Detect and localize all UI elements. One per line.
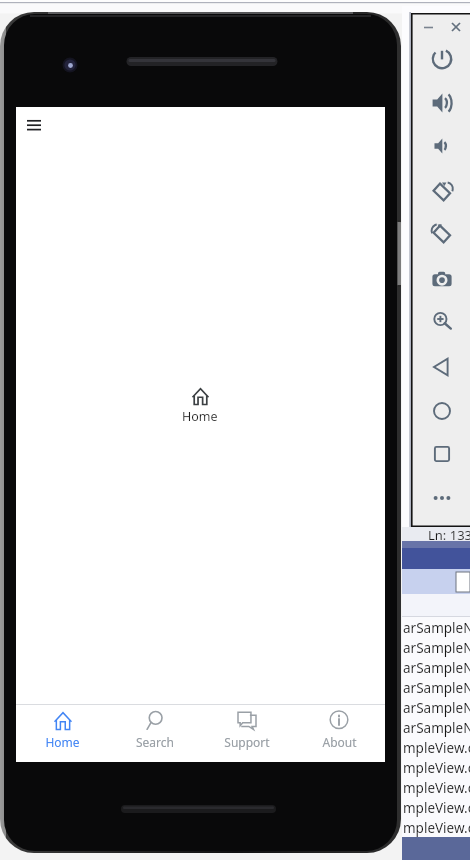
- staticText: arSampleNes: [403, 659, 470, 677]
- button[interactable]: More: [428, 484, 456, 512]
- staticText: arSampleNes: [403, 679, 470, 697]
- button[interactable]: Rotate right: [428, 220, 456, 248]
- staticText: mpleView.cs: [403, 759, 470, 777]
- button[interactable]: Close: [444, 15, 468, 39]
- button[interactable]: About: [293, 705, 385, 750]
- staticText: About: [322, 734, 357, 750]
- button[interactable]: Search: [109, 705, 201, 750]
- staticText: Support: [224, 734, 270, 750]
- button[interactable]: Power: [428, 45, 456, 73]
- button[interactable]: Rotate left: [428, 178, 456, 206]
- button[interactable]: Screenshot: [428, 265, 456, 293]
- button[interactable]: Home: [16, 705, 109, 750]
- staticText: Home: [45, 734, 80, 750]
- button[interactable]: Volume down: [428, 132, 456, 160]
- staticText: arSampleNes: [403, 699, 470, 717]
- button[interactable]: Volume up: [428, 89, 456, 117]
- staticText: arSampleNes: [403, 639, 470, 657]
- staticText: mpleView.cs: [403, 779, 470, 797]
- button[interactable]: Menu: [18, 109, 50, 141]
- staticText: Search: [136, 734, 174, 750]
- button[interactable]: Overview: [428, 440, 456, 468]
- staticText: arSampleNes: [403, 619, 470, 637]
- staticText: mpleView.cs: [403, 819, 470, 837]
- staticText: arSampleNes: [403, 719, 470, 737]
- button[interactable]: Home: [428, 397, 456, 425]
- button[interactable]: Minimize: [416, 15, 440, 39]
- staticText: Ln: 133: [428, 526, 470, 544]
- button[interactable]: Back: [428, 353, 456, 381]
- staticText: Home: [182, 408, 218, 425]
- staticText: mpleView.cs: [403, 739, 470, 757]
- button[interactable]: Zoom: [428, 305, 456, 333]
- button[interactable]: Support: [201, 705, 293, 750]
- staticText: mpleView.cs: [403, 799, 470, 817]
